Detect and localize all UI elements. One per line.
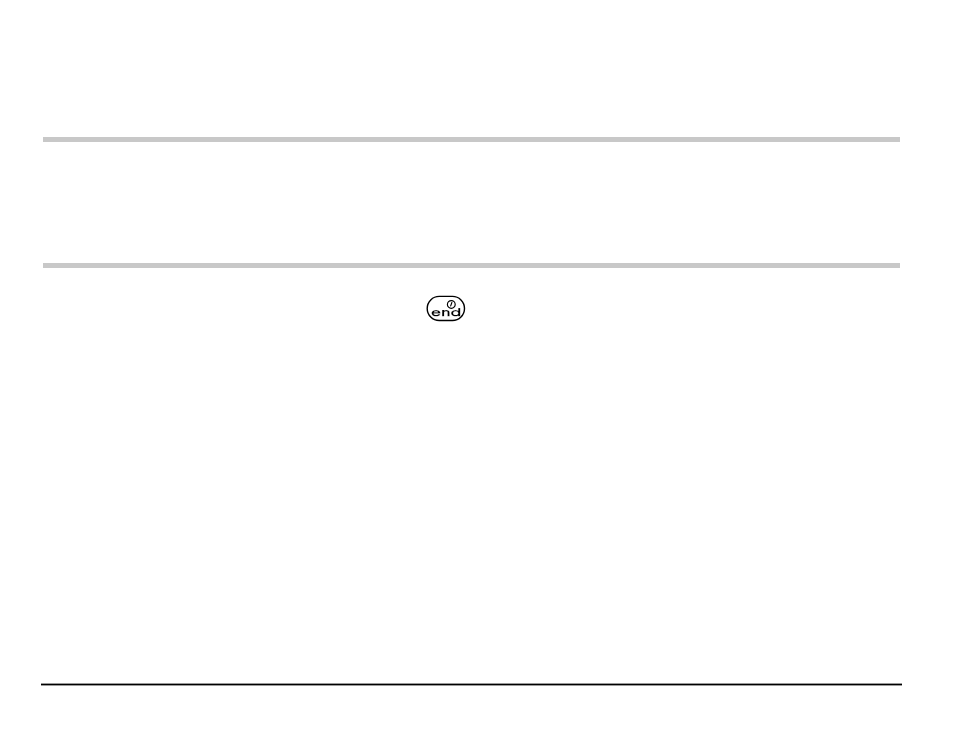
button[interactable]: end. home [426,295,465,322]
